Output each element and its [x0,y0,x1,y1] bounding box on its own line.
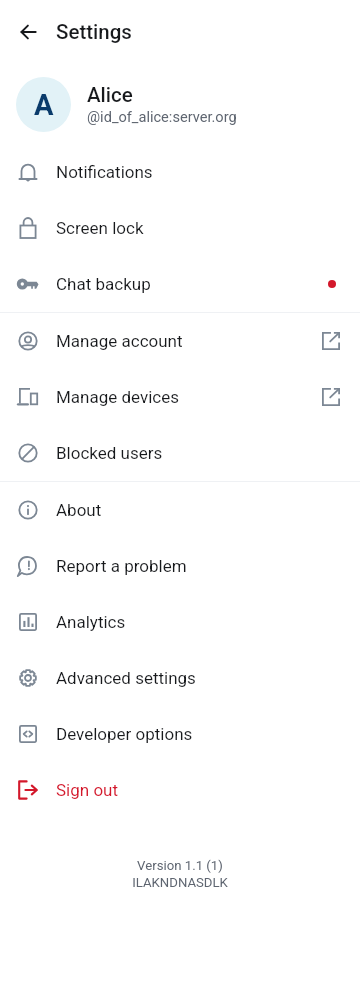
staticText: Analytics [56,612,126,632]
button[interactable]: Manage devices [0,369,360,425]
staticText: Alice [87,83,133,107]
staticText: About [56,500,102,520]
button[interactable]: Developer options [0,706,360,762]
staticText: Report a problem [56,556,187,576]
button[interactable]: Manage account [0,313,360,369]
button[interactable]: Back [0,4,56,60]
staticText: @id_of_alice:server.org [87,108,237,125]
staticText: Blocked users [56,443,163,463]
button[interactable]: Blocked users [0,425,360,481]
button[interactable]: Report a problem [0,538,360,594]
staticText: Screen lock [56,218,144,238]
staticText: ILAKNDNASDLK [132,875,228,890]
staticText: Notifications [56,162,153,182]
staticText: Sign out [56,780,119,800]
staticText: Settings [56,20,132,44]
button[interactable]: A [0,64,360,144]
button[interactable]: Screen lock [0,200,360,256]
staticText: Developer options [56,724,193,744]
button[interactable]: Sign out [0,762,360,818]
staticText: Chat backup [56,274,151,294]
button[interactable]: Analytics [0,594,360,650]
staticText: Version 1.1 (1) [137,858,223,873]
button[interactable]: Chat backup [0,256,360,312]
button[interactable]: Advanced settings [0,650,360,706]
button[interactable]: Notifications [0,144,360,200]
staticText: Advanced settings [56,668,196,688]
staticText: A [34,88,54,122]
staticText: Manage devices [56,387,180,407]
button[interactable]: About [0,482,360,538]
staticText: Manage account [56,331,183,351]
